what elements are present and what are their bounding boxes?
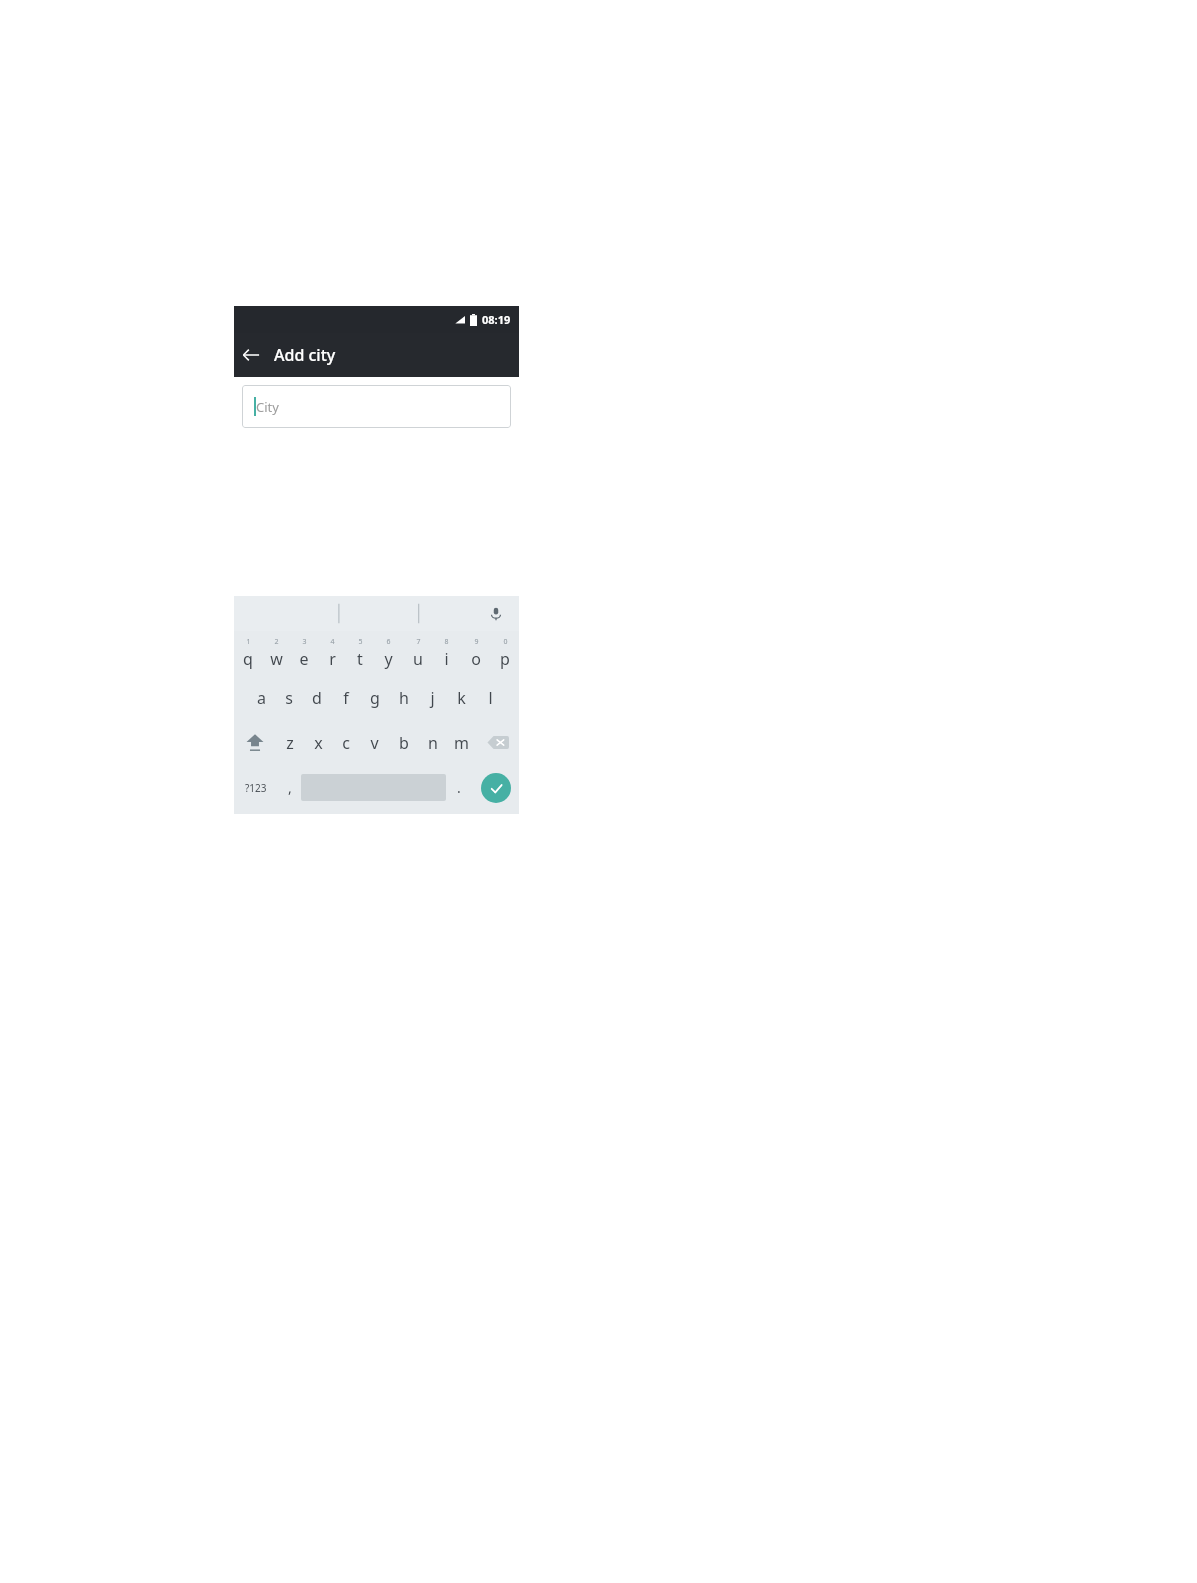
button[interactable]: 9 [461,631,490,675]
staticText: m [454,732,469,754]
staticText: c [342,732,350,754]
button[interactable]: . [446,765,472,810]
button[interactable]: j [418,675,447,720]
button[interactable]: n [418,720,447,765]
button[interactable]: 7 [403,631,432,675]
button[interactable]: Shift [234,720,276,765]
button[interactable]: Back [234,338,268,372]
staticText: 0 [503,637,508,647]
staticText: . [457,778,461,797]
staticText: 9 [474,637,479,647]
button[interactable]: 3 [290,631,318,675]
button[interactable]: f [331,675,360,720]
staticText: z [286,732,294,754]
button[interactable]: Voice input [484,602,508,626]
staticText: 08:19 [482,312,511,327]
staticText: w [270,648,283,670]
staticText: ?123 [245,781,267,795]
button[interactable]: 4 [318,631,346,675]
staticText: n [428,732,438,754]
button[interactable]: ?123 [234,765,278,810]
button[interactable]: h [389,675,418,720]
button[interactable]: City [242,385,511,428]
button[interactable]: c [332,720,360,765]
staticText: 3 [302,637,307,647]
staticText: l [488,687,493,709]
button[interactable]: , [278,765,301,810]
staticText: u [413,648,423,670]
button[interactable]: Done [481,773,511,803]
button[interactable]: v [360,720,389,765]
button[interactable]: 6 [374,631,403,675]
staticText: k [457,687,466,709]
button[interactable]: x [304,720,332,765]
button[interactable]: k [447,675,476,720]
staticText: City [256,398,279,416]
staticText: r [329,648,336,670]
staticText: x [314,732,323,754]
staticText: j [430,687,435,709]
button[interactable]: l [476,675,505,720]
button[interactable]: Backspace [476,720,519,765]
staticText: e [299,648,309,670]
staticText: 8 [444,637,449,647]
staticText: g [370,687,380,709]
button[interactable]: s [275,675,303,720]
staticText: o [471,648,481,670]
staticText: 6 [386,637,391,647]
button[interactable]: d [303,675,331,720]
staticText: 2 [274,637,279,647]
staticText: s [285,687,293,709]
button[interactable]: 1 [234,631,262,675]
staticText: 4 [330,637,335,647]
staticText: y [384,648,393,670]
button[interactable]: 2 [262,631,290,675]
staticText: Add city [274,344,336,366]
button[interactable]: 5 [346,631,374,675]
staticText: , [288,778,292,797]
button[interactable]: 8 [432,631,461,675]
button[interactable]: g [360,675,389,720]
button[interactable]: 0 [490,631,519,675]
staticText: h [399,687,409,709]
staticText: p [500,648,510,670]
staticText: 7 [416,637,421,647]
button[interactable]: a [247,675,275,720]
staticText: v [370,732,379,754]
button[interactable]: b [389,720,418,765]
staticText: b [399,732,409,754]
staticText: i [444,648,449,670]
button[interactable]: m [447,720,476,765]
staticText: 5 [358,637,363,647]
button[interactable]: z [276,720,304,765]
staticText: q [243,648,253,670]
staticText: 1 [246,637,251,647]
staticText: t [357,648,363,670]
staticText: a [257,687,266,709]
staticText: d [312,687,322,709]
staticText: f [343,687,349,709]
